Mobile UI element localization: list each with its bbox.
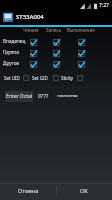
button[interactable]: Checked [53, 50, 60, 57]
button[interactable]: Отмена [0, 182, 56, 198]
staticText: Sticky [61, 75, 74, 81]
staticText: Запись [46, 27, 62, 33]
staticText: OK [80, 187, 88, 194]
button[interactable]: Checked [78, 50, 85, 57]
button[interactable]: Checked [78, 39, 85, 46]
button[interactable]: Checked [30, 39, 37, 46]
staticText: Чтение [23, 27, 39, 33]
button[interactable]: Unchecked [77, 75, 83, 81]
button[interactable]: Unchecked [23, 75, 29, 81]
button[interactable]: Checked [53, 39, 60, 46]
staticText: Enter Octal [6, 93, 33, 100]
staticText: Set GID [32, 75, 48, 81]
button[interactable]: Checked [30, 61, 37, 68]
button[interactable]: Checked [30, 50, 37, 57]
staticText: 0777 [38, 93, 49, 99]
staticText: rwxrwxrwx [57, 93, 78, 98]
button[interactable]: Checked [78, 61, 85, 68]
staticText: ST33A004 [16, 13, 44, 21]
staticText: 7:27 [99, 2, 109, 9]
button[interactable]: OK [56, 182, 112, 198]
staticText: Выполнение [67, 27, 95, 33]
staticText: Группа [3, 49, 19, 55]
button[interactable]: Checked [53, 61, 60, 68]
staticText: Отмена [18, 187, 39, 194]
staticText: Владелец [3, 38, 26, 44]
button[interactable]: Enter Octal [5, 91, 33, 102]
staticText: Set UID [4, 75, 20, 81]
staticText: Другое [3, 60, 20, 66]
button[interactable]: Unchecked [53, 75, 59, 81]
